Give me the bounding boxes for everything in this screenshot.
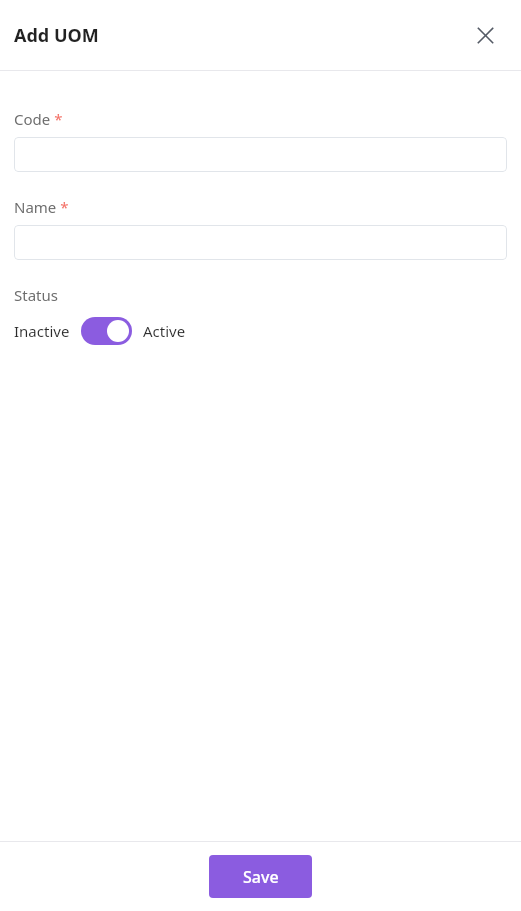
- button[interactable]: Save: [209, 855, 312, 898]
- button[interactable]: [14, 225, 507, 260]
- staticText: Add UOM: [14, 23, 99, 48]
- button[interactable]: [14, 137, 507, 172]
- staticText: Code *: [14, 109, 63, 129]
- staticText: Active: [143, 321, 186, 341]
- staticText: Name *: [14, 197, 69, 217]
- staticText: Save: [243, 866, 279, 888]
- staticText: Inactive: [14, 321, 70, 341]
- button[interactable]: Status toggle: [81, 317, 132, 345]
- button[interactable]: Close: [469, 19, 501, 51]
- staticText: Status: [14, 285, 58, 305]
